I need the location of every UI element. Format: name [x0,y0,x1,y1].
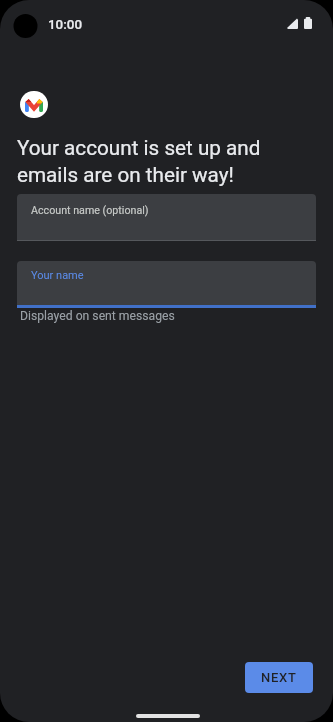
staticText: Your account is set up and emails are on… [17,136,261,187]
button[interactable]: NEXT [245,662,313,693]
other: Mobile signal strength [287,18,298,29]
other: Battery full [304,17,312,29]
staticText: Displayed on sent messages [20,309,175,323]
staticText: NEXT [261,670,297,685]
other: Gmail [20,91,48,118]
button[interactable]: Account name (optional) [17,194,316,241]
staticText: Account name (optional) [31,204,149,217]
button[interactable]: Your name [17,261,316,308]
staticText: Your name [31,269,84,282]
staticText: 10:00 [48,17,82,33]
